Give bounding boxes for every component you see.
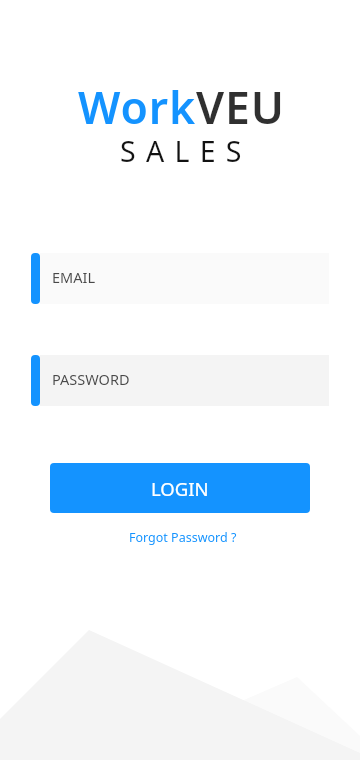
button[interactable]: PASSWORD [31, 355, 329, 406]
button[interactable]: LOGIN [50, 463, 310, 513]
staticText: WorkVEU [78, 76, 285, 137]
staticText: EMAIL [52, 267, 95, 287]
staticText: Forgot Password ? [129, 529, 237, 546]
button[interactable]: Forgot Password ? [118, 526, 242, 549]
button[interactable]: EMAIL [31, 253, 329, 304]
staticText: LOGIN [151, 476, 209, 501]
staticText: PASSWORD [52, 369, 130, 389]
staticText: SALES [120, 132, 252, 171]
